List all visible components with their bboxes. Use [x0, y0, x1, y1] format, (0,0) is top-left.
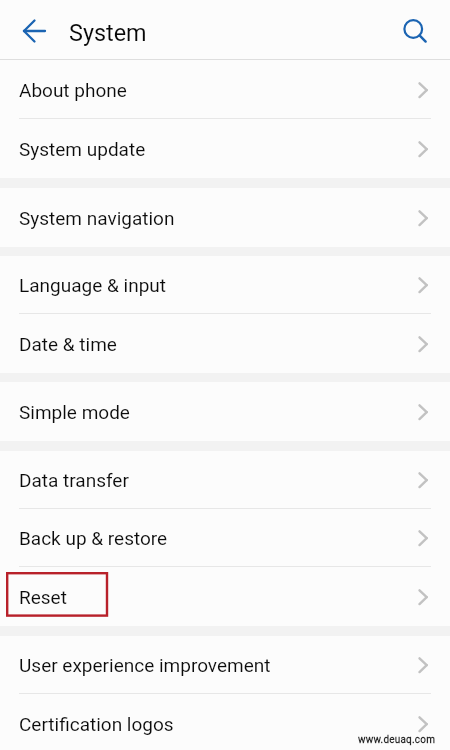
button[interactable]: Reset	[0, 567, 450, 626]
staticText: About phone	[19, 79, 127, 101]
staticText: Language & input	[19, 274, 166, 296]
staticText: User experience improvement	[19, 654, 271, 676]
button[interactable]: Back	[10, 6, 58, 54]
staticText: Data transfer	[19, 469, 129, 491]
staticText: System	[69, 19, 147, 46]
staticText: System update	[19, 138, 146, 160]
staticText: System navigation	[19, 207, 175, 229]
button[interactable]: Simple mode	[0, 382, 450, 441]
button[interactable]: Certification logos	[0, 694, 450, 750]
staticText: Reset	[19, 586, 67, 608]
staticText: Certification logos	[19, 713, 174, 735]
button[interactable]: Language & input	[0, 256, 450, 314]
button[interactable]: System navigation	[0, 188, 450, 247]
button[interactable]: Date & time	[0, 314, 450, 373]
button[interactable]: User experience improvement	[0, 636, 450, 694]
button[interactable]: System update	[0, 119, 450, 178]
button[interactable]: Search	[390, 6, 438, 54]
staticText: Back up & restore	[19, 527, 168, 549]
staticText: Simple mode	[19, 401, 130, 423]
staticText: Date & time	[19, 333, 117, 355]
button[interactable]: Data transfer	[0, 451, 450, 509]
staticText: www.deuaq.com	[358, 734, 436, 746]
button[interactable]: About phone	[0, 60, 450, 119]
button[interactable]: Back up & restore	[0, 509, 450, 567]
